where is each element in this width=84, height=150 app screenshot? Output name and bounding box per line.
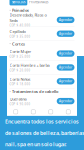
staticText: Encuentra todos los servicios xyxy=(5,118,79,125)
staticText: COP $ 18.000 xyxy=(9,83,30,86)
staticText: PROFESIONALES xyxy=(29,0,48,4)
staticText: SERVICIOS xyxy=(12,0,25,4)
button[interactable]: Citas xyxy=(42,110,59,114)
button[interactable]: Inicio xyxy=(7,110,24,114)
button[interactable]: Corte Mujer xyxy=(7,47,77,60)
staticText: Agendar xyxy=(59,66,72,69)
button[interactable]: Desenredado, Rizos o Seda xyxy=(7,13,77,27)
staticText: Agendar xyxy=(59,18,72,22)
button[interactable]: Perfil xyxy=(59,110,77,114)
button[interactable]: PROFESIONALES xyxy=(29,0,48,4)
staticText: Agendar xyxy=(59,32,72,35)
button[interactable]: Buscar xyxy=(24,110,42,114)
staticText: Queratina xyxy=(9,96,26,102)
staticText: nail, spa en un solo lugar. xyxy=(5,141,66,148)
staticText: Peinados xyxy=(12,7,29,13)
staticText: COP $ 35.000 xyxy=(9,35,30,38)
staticText: Desenredado, Rizos o Seda xyxy=(9,12,46,23)
staticText: de salones de belleza, barberías, xyxy=(5,129,84,136)
button[interactable]: SERVICIOS xyxy=(9,0,27,5)
staticText: COP $ 90.000 xyxy=(9,102,30,106)
staticText: COP $ 40.000 xyxy=(9,24,30,27)
staticText: Agendar xyxy=(59,79,72,83)
staticText: Cortes xyxy=(12,41,25,46)
staticText: Agendar xyxy=(59,52,72,55)
staticText: COP $ 20.000 xyxy=(9,69,30,72)
button[interactable]: Cepillado xyxy=(7,27,77,40)
staticText: Tratamientos de cabello xyxy=(12,89,58,94)
button[interactable]: Corte Hombre + barba xyxy=(7,61,77,74)
staticText: Corte Hombre + barba xyxy=(9,63,49,68)
staticText: Agendar xyxy=(59,99,72,103)
staticText: Corte Niños xyxy=(9,76,30,82)
staticText: Cepillado xyxy=(9,29,25,34)
staticText: COP $ 25.000 xyxy=(9,55,30,58)
staticText: Corte Mujer xyxy=(9,49,31,54)
button[interactable]: Corte Niños xyxy=(7,74,77,88)
button[interactable]: Queratina xyxy=(7,94,77,108)
